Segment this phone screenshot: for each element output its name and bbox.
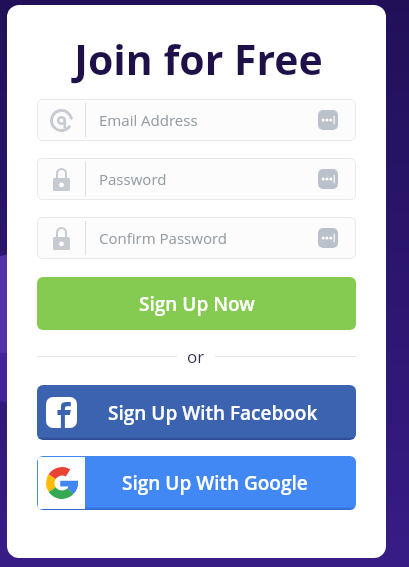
button[interactable]: Sign Up With Facebook xyxy=(37,385,356,440)
button[interactable]: Confirm Password xyxy=(37,217,356,259)
staticText: Sign Up With Google xyxy=(122,470,308,496)
staticText: Confirm Password xyxy=(99,228,318,248)
button[interactable]: Email Address xyxy=(37,99,356,141)
button[interactable]: Sign Up With Google xyxy=(37,456,356,510)
button[interactable]: Show characters xyxy=(318,169,338,189)
button[interactable]: Password xyxy=(37,158,356,200)
staticText: Join for Free xyxy=(9,31,386,87)
staticText: Email Address xyxy=(99,110,318,130)
button[interactable]: Show characters xyxy=(318,110,338,130)
staticText: or xyxy=(187,345,205,368)
button[interactable]: Sign Up Now xyxy=(37,277,356,330)
staticText: Password xyxy=(99,169,318,189)
staticText: Sign Up Now xyxy=(139,291,255,317)
button[interactable]: Show characters xyxy=(318,228,338,248)
staticText: Sign Up With Facebook xyxy=(108,400,318,426)
